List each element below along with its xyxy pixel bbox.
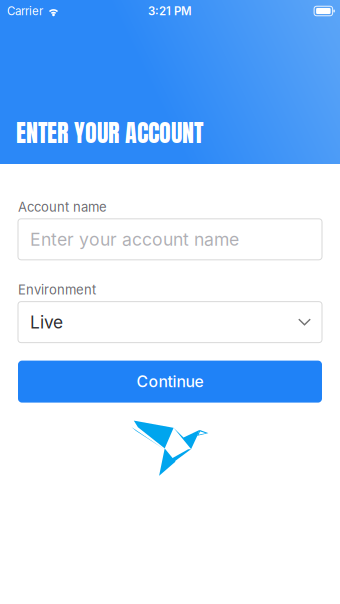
staticText: Enter your account name <box>30 229 239 250</box>
staticText: Live <box>30 312 63 333</box>
button[interactable]: Continue <box>18 361 322 403</box>
staticText: Carrier <box>7 4 43 18</box>
button[interactable]: Live <box>18 302 322 343</box>
staticText: 3:21 PM <box>148 4 192 18</box>
staticText: Account name <box>18 199 107 215</box>
staticText: Continue <box>136 372 203 391</box>
staticText: Environment <box>18 282 96 298</box>
staticText: ENTER YOUR ACCOUNT <box>16 115 203 151</box>
